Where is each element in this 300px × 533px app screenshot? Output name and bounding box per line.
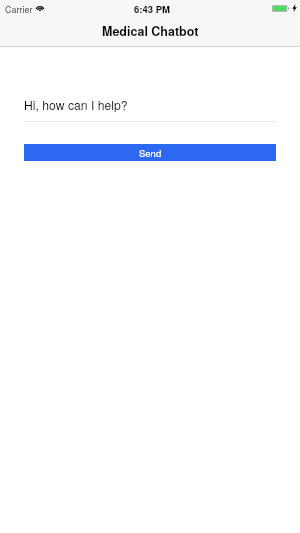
other: Wi-Fi signal [35,4,45,11]
button[interactable]: Send [24,144,276,161]
other: Battery charging [272,4,297,12]
staticText: 6:43 PM [134,2,170,16]
staticText: Send [139,146,162,160]
staticText: Hi, how can I help? [24,96,128,113]
staticText: Medical Chatbot [102,22,199,40]
staticText: Carrier [5,3,33,16]
button[interactable]: Hi, how can I help? [24,96,276,122]
